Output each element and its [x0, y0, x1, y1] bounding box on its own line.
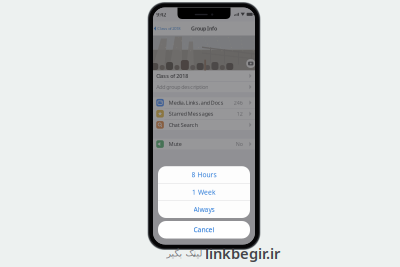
staticText: Chat Search [169, 121, 198, 128]
staticText: Add group description [156, 83, 208, 90]
staticText: Group Info [191, 25, 217, 32]
staticText: Mute [169, 140, 182, 148]
staticText: Cancel [193, 225, 214, 234]
button[interactable]: Mute [150, 139, 258, 149]
button[interactable]: Change group photo [244, 56, 258, 70]
staticText: linkbegir.ir [205, 243, 280, 263]
button[interactable]: Starred Messages [150, 108, 258, 119]
button[interactable]: Chat Search [150, 119, 258, 130]
button[interactable]: Always [158, 201, 250, 218]
button[interactable]: Media, Links, and Docs [150, 97, 258, 108]
button[interactable]: Class of 2018 [150, 24, 180, 33]
staticText: 9:42 [156, 11, 166, 18]
staticText: 1 Week [192, 188, 216, 197]
staticText: Always [193, 205, 214, 214]
button[interactable]: Class of 2018 [150, 70, 258, 81]
staticText: 8 Hours [191, 170, 216, 179]
button[interactable]: Add group description [150, 82, 258, 92]
button[interactable]: Cancel [158, 221, 250, 238]
staticText: Class of 2018 [157, 26, 180, 31]
staticText: Starred Messages [169, 110, 214, 117]
staticText: Media, Links, and Docs [169, 99, 224, 106]
staticText: No [236, 140, 243, 148]
staticText: لینک بگیر [166, 248, 202, 259]
staticText: Class of 2018 [156, 72, 188, 79]
button[interactable]: 8 Hours [158, 166, 250, 183]
staticText: 246 [234, 99, 243, 106]
button[interactable]: 1 Week [158, 184, 250, 201]
staticText: 12 [237, 110, 243, 117]
